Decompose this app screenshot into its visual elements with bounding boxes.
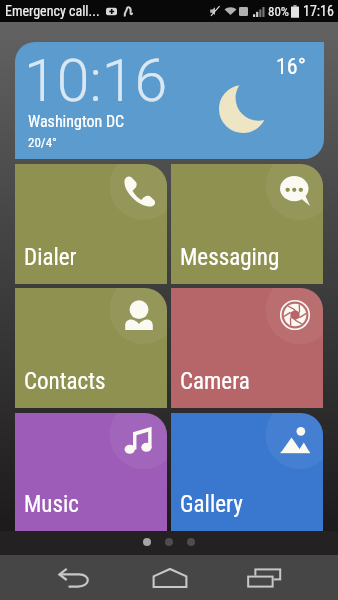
staticText: Gallery xyxy=(180,491,243,518)
button[interactable]: Camera xyxy=(171,288,323,408)
staticText: Camera xyxy=(180,368,250,395)
staticText: Contacts xyxy=(24,368,106,395)
button[interactable]: Gallery xyxy=(171,413,323,531)
button[interactable]: Back xyxy=(41,555,109,600)
button[interactable]: 10:16 xyxy=(15,42,324,159)
button[interactable]: Messaging xyxy=(171,164,323,284)
button[interactable]: Contacts xyxy=(15,288,167,408)
staticText: Dialer xyxy=(24,244,77,271)
button[interactable]: Home xyxy=(136,555,204,600)
staticText: Messaging xyxy=(180,244,280,271)
staticText: 16° xyxy=(276,54,306,80)
staticText: Music xyxy=(24,491,79,518)
button[interactable]: Music xyxy=(15,413,167,531)
staticText: 17:16 xyxy=(303,3,334,19)
button[interactable]: Recent apps xyxy=(230,555,298,600)
staticText: 10:16 xyxy=(24,46,168,115)
staticText: Washington DC xyxy=(28,112,125,131)
staticText: Emergency call... xyxy=(5,3,100,19)
staticText: 80% xyxy=(268,4,290,19)
button[interactable]: Dialer xyxy=(15,164,167,284)
staticText: 20/4° xyxy=(28,135,57,150)
